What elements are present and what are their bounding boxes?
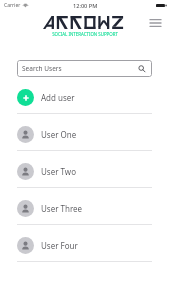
staticText: User Four bbox=[41, 240, 78, 251]
staticText: User One bbox=[41, 129, 77, 140]
button[interactable]: User Four bbox=[0, 225, 169, 262]
button[interactable]: User Three bbox=[0, 188, 169, 225]
button[interactable]: Search Users bbox=[17, 60, 152, 77]
staticText: Search Users bbox=[22, 64, 62, 73]
button[interactable]: Add user bbox=[0, 77, 169, 114]
staticText: User Two bbox=[41, 166, 76, 177]
staticText: 12:00 PM bbox=[73, 2, 98, 10]
button[interactable]: Menu bbox=[145, 14, 166, 31]
staticText: SOCIAL INTERACTION SUPPORT bbox=[52, 31, 118, 37]
button[interactable]: User One bbox=[0, 114, 169, 151]
staticText: Add user bbox=[41, 92, 75, 103]
staticText: Carrier bbox=[4, 2, 21, 9]
button[interactable]: User Two bbox=[0, 151, 169, 188]
staticText: User Three bbox=[41, 203, 83, 214]
